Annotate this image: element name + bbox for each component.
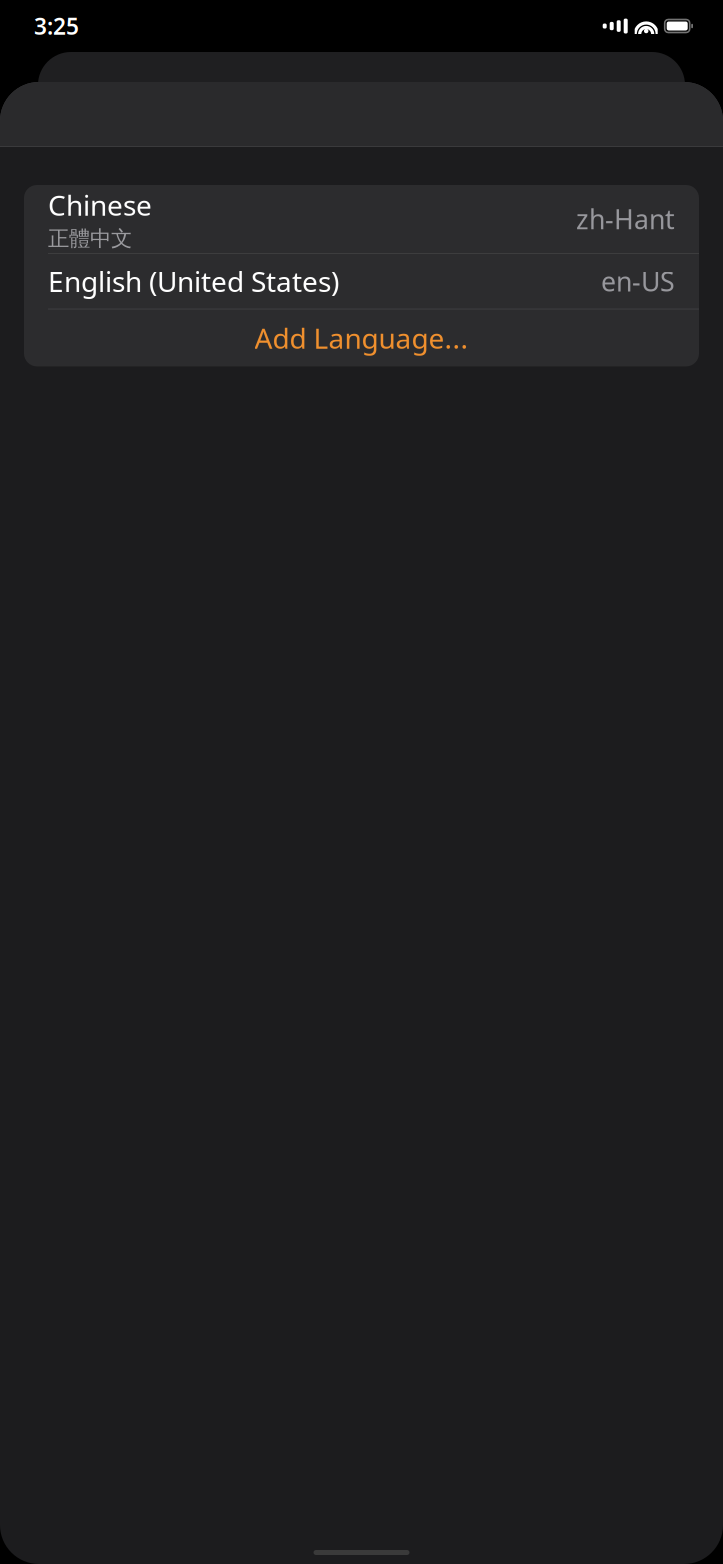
button[interactable]: Edit [661, 88, 723, 140]
button[interactable]: Chinese [24, 185, 699, 253]
staticText: English (United States) [48, 263, 339, 300]
staticText: 正體中文 [48, 225, 132, 252]
staticText: zh-Hant [576, 201, 675, 237]
button[interactable]: Add Language... [24, 309, 699, 366]
staticText: Add Language... [254, 319, 468, 356]
staticText: Chinese [48, 186, 152, 223]
button[interactable]: English (United States) [24, 254, 699, 309]
staticText: en-US [601, 263, 675, 299]
button[interactable]: Back [0, 88, 90, 140]
staticText: 3:25 [34, 11, 79, 41]
